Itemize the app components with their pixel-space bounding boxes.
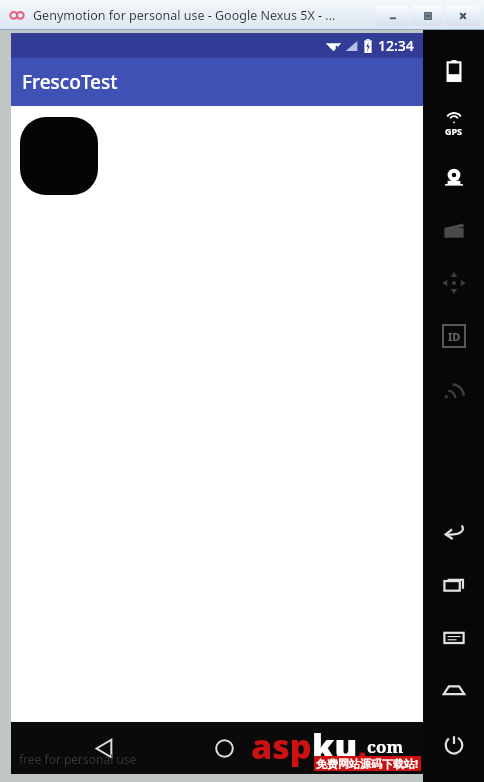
- button[interactable]: Menu: [423, 609, 484, 662]
- staticText: 12:34: [378, 36, 414, 55]
- button[interactable]: Camera: [423, 150, 484, 203]
- staticText: ID: [448, 329, 461, 344]
- staticText: free for personal use: [19, 751, 137, 767]
- staticText: com: [367, 735, 404, 758]
- staticText: GPS: [445, 125, 463, 137]
- button[interactable]: GPS: [423, 97, 484, 150]
- button[interactable]: Record: [423, 203, 484, 256]
- button[interactable]: D-pad: [423, 256, 484, 309]
- button[interactable]: Identifiers: [423, 309, 484, 362]
- button[interactable]: Home: [423, 662, 484, 715]
- staticText: 免费网站源码下载站!: [316, 756, 419, 771]
- button[interactable]: Maximize: [411, 5, 444, 26]
- button[interactable]: Minimize: [376, 5, 409, 26]
- staticText: .: [358, 726, 367, 767]
- button[interactable]: Home: [203, 727, 245, 769]
- staticText: Genymotion for personal use - Google Nex…: [33, 7, 336, 24]
- staticText: asp: [251, 723, 312, 769]
- staticText: FrescoTest: [22, 69, 118, 95]
- staticText: ku: [312, 723, 358, 769]
- button[interactable]: Recents: [423, 556, 484, 609]
- button[interactable]: Back: [83, 727, 125, 769]
- button[interactable]: Image: [20, 117, 98, 195]
- button[interactable]: Close: [446, 5, 479, 26]
- button[interactable]: Power: [423, 715, 484, 768]
- button[interactable]: Back: [423, 503, 484, 556]
- button[interactable]: Battery: [423, 44, 484, 97]
- button[interactable]: Network: [423, 362, 484, 415]
